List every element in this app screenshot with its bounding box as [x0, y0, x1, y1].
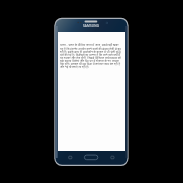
staticText: SAMSUNG: [54, 24, 128, 28]
staticText: भारत - भारत के मीडिया जगत में आज, सबसे ब…: [60, 43, 122, 83]
button[interactable]: भारत - भारत के मीडिया जगत में आज, सबसे ब…: [58, 32, 125, 151]
button[interactable]: Home: [84, 155, 97, 160]
